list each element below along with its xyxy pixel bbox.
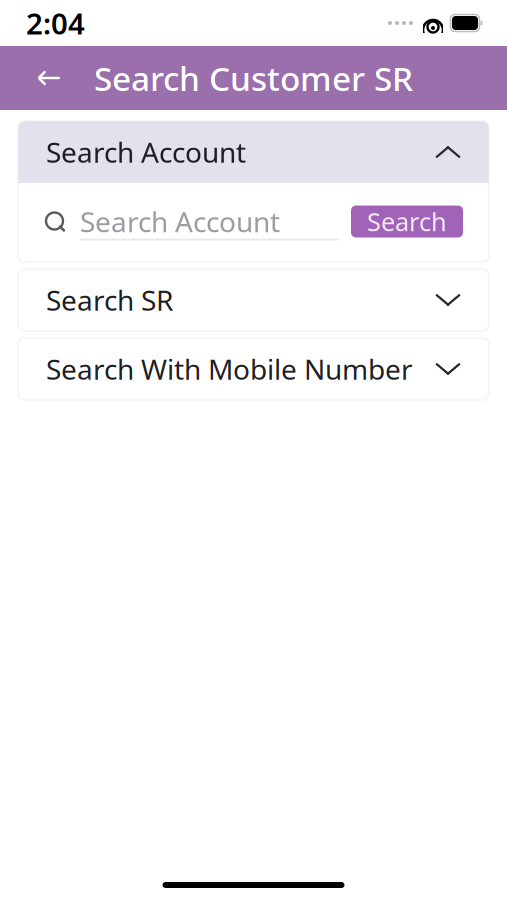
staticText: Search Account (46, 133, 246, 171)
button[interactable]: Search With Mobile Number (18, 338, 489, 400)
staticText: Search Account (80, 203, 280, 240)
button[interactable]: Search Account (18, 121, 489, 183)
staticText: Search SR (46, 281, 173, 319)
staticText: Search With Mobile Number (46, 350, 413, 388)
staticText: 2:04 (26, 3, 85, 42)
button[interactable]: Search SR (18, 269, 489, 331)
staticText: Search Customer SR (94, 56, 413, 100)
button[interactable]: Search (351, 205, 463, 237)
staticText: Search (367, 205, 447, 238)
button[interactable]: Back (22, 53, 76, 103)
